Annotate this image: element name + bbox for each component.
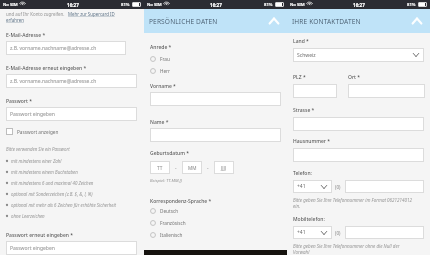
button[interactable]: Deutsch [150,205,281,217]
button[interactable]: Country code [293,226,332,239]
staticText: E-Mail-Adresse erneut eingeben * [6,65,87,72]
staticText: Französisch [160,220,186,226]
staticText: No SIM [147,2,162,8]
staticText: z.B. vorname.nachname@adresse.ch [10,45,97,52]
button[interactable]: Passwort eingeben [6,107,137,121]
button[interactable] [293,148,424,162]
button[interactable]: JJJJ [214,161,234,174]
staticText: Frau [160,56,170,62]
staticText: Mobiltelefon: [293,216,325,223]
staticText: PLZ * [293,74,306,81]
button[interactable]: z.B. vorname.nachname@adresse.ch [6,74,137,88]
button[interactable] [348,84,425,98]
staticText: IHRE KONTAKTDATEN [292,17,361,26]
button[interactable]: Herr [150,65,281,77]
staticText: Passwort * [6,98,32,105]
button[interactable]: MM [182,161,202,174]
button[interactable]: Passwort anzeigen [6,126,137,137]
staticText: mit mindestens 6 und maximal 40 Zeichen [11,180,94,186]
other: Collapse section [268,15,280,27]
button[interactable]: Passwort eingeben [6,241,137,255]
button[interactable]: PERSÖNLICHE DATEN [144,9,287,33]
staticText: optional mit Sonderzeichen (z.B. $, &, !… [11,191,93,197]
staticText: Korrespondenz-Sprache * [150,198,212,205]
button[interactable] [293,84,337,98]
staticText: Vorname * [150,83,176,90]
staticText: +41 [297,183,306,190]
staticText: 16:27 [67,2,79,8]
button[interactable] [345,180,424,193]
staticText: Herr [160,68,170,74]
staticText: Passwort eingeben [10,111,55,118]
staticText: Beispiel: TT.MM.JJ [150,178,182,184]
staticText: z.B. vorname.nachname@adresse.ch [10,78,97,85]
staticText: E-Mail-Adresse * [6,32,46,39]
staticText: (0) [335,230,341,236]
button[interactable]: Select country [293,48,424,62]
button[interactable] [345,226,424,239]
staticText: Mehr zur Supercard ID [68,11,115,17]
button[interactable]: Italienisch [150,229,281,241]
staticText: Strasse * [293,107,315,114]
staticText: erfahren [6,17,24,23]
staticText: +41 [297,229,306,236]
staticText: mit mindestens einem Buchstaben [11,169,78,175]
staticText: Bitte geben Sie Ihre Telefonnummer im Fo… [293,197,414,210]
button[interactable]: Frau [150,53,281,65]
staticText: und auf Ihr Konto zugreifen. [6,11,65,17]
staticText: - [207,165,209,171]
staticText: Passwort eingeben [10,245,55,252]
other: Collapse section [411,15,423,27]
staticText: mit mindestens einer Zahl [11,158,62,164]
staticText: Deutsch [160,208,179,214]
button[interactable]: Französisch [150,217,281,229]
staticText: 16:27 [353,2,365,8]
staticText: 81% [121,2,130,8]
staticText: JJJJ [221,165,227,171]
staticText: Geburtsdatum * [150,150,189,157]
staticText: MM [188,165,197,171]
staticText: Schweiz [297,52,316,59]
button[interactable]: TT [150,161,170,174]
staticText: Telefon: [293,170,312,177]
staticText: Bitte verwenden Sie ein Passwort [6,146,70,152]
staticText: Passwort anzeigen [17,129,59,135]
staticText: Ort * [348,74,360,81]
staticText: No SIM [3,2,18,8]
button[interactable]: IHRE KONTAKTDATEN [287,9,430,33]
staticText: Passwort erneut eingeben * [6,232,74,239]
staticText: 81% [264,2,273,8]
staticText: 16:27 [210,2,222,8]
staticText: Bitte geben Sie Ihre Telefonnummer ohne … [293,243,414,255]
staticText: TT [157,165,163,171]
staticText: No SIM [290,2,305,8]
staticText: ohne Leerzeichen [11,213,45,219]
button[interactable] [150,92,281,106]
button[interactable] [293,117,424,131]
staticText: (0) [335,184,341,190]
staticText: PERSÖNLICHE DATEN [149,17,218,26]
staticText: optional mit mehr als 6 Zeichen für erhö… [11,202,116,208]
staticText: - [175,165,177,171]
staticText: Land * [293,38,309,45]
staticText: 81% [407,2,416,8]
button[interactable]: Country code [293,180,332,193]
staticText: Hausnummer * [293,138,330,145]
staticText: Italienisch [160,232,183,238]
button[interactable] [150,128,281,142]
staticText: Name * [150,119,169,126]
button[interactable]: z.B. vorname.nachname@adresse.ch [6,41,126,55]
staticText: Anrede * [150,44,172,51]
